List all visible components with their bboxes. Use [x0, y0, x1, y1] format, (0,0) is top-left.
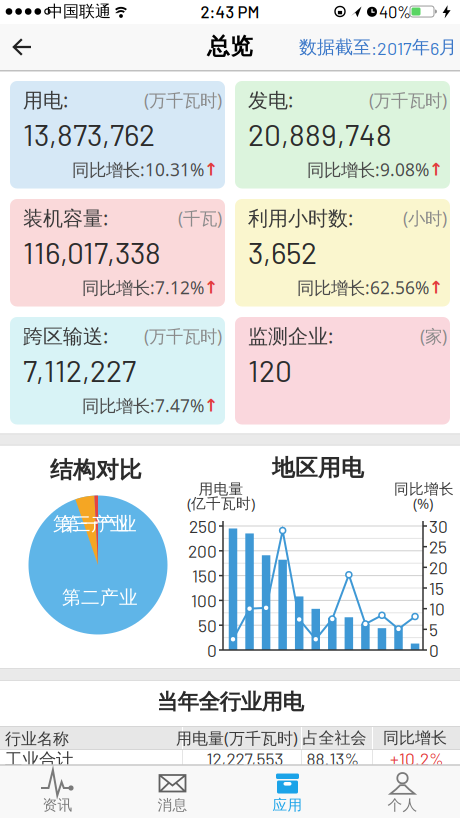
button[interactable]: 利用小时数: — [235, 199, 450, 306]
staticText: 数据截至:2017年6月 — [299, 36, 457, 59]
staticText: 13,873,762 — [23, 116, 155, 152]
button[interactable]: 消息 — [130, 765, 215, 818]
staticText: (家) — [420, 324, 447, 347]
staticText: (千瓦) — [178, 206, 222, 229]
staticText: (小时) — [403, 206, 447, 229]
button[interactable]: 跨区输送: — [10, 317, 225, 424]
staticText: 同比增长 — [394, 480, 454, 498]
staticText: (%) — [413, 493, 433, 513]
staticText: 同比增长:10.31% — [72, 158, 204, 181]
button[interactable]: Back — [3, 25, 47, 69]
staticText: 监测企业: — [248, 322, 333, 349]
button[interactable]: 资讯 — [15, 765, 100, 818]
staticText: 用电量(万千瓦时) — [176, 727, 298, 749]
staticText: 200 — [188, 540, 217, 561]
button[interactable]: 装机容量: — [10, 199, 225, 306]
staticText: 7,112,227 — [23, 352, 136, 388]
staticText: 资讯 — [42, 796, 72, 814]
staticText: ↑ — [204, 396, 219, 415]
staticText: (万千瓦时) — [144, 324, 222, 347]
staticText: 30 — [429, 516, 448, 536]
staticText: 3,652 — [248, 234, 317, 270]
staticText: 15 — [429, 578, 444, 598]
staticText: ↑ — [429, 278, 444, 297]
staticText: 100 — [191, 590, 217, 611]
staticText: 当年全行业用电 — [156, 689, 303, 715]
staticText: 装机容量: — [23, 204, 108, 231]
staticText: 第一产业 — [61, 512, 137, 535]
staticText: 个人 — [387, 796, 417, 814]
staticText: 120 — [248, 352, 292, 388]
staticText: ↑ — [204, 160, 219, 179]
staticText: 12,227,553 — [206, 748, 283, 769]
staticText: 消息 — [157, 796, 187, 814]
button[interactable]: 个人 — [360, 765, 445, 818]
staticText: +10.2% — [390, 748, 444, 769]
staticText: 应用 — [272, 796, 302, 814]
staticText: 50 — [198, 615, 217, 636]
button[interactable]: 发电: — [235, 81, 450, 188]
staticText: 用电量 — [198, 480, 243, 498]
staticText: ↑ — [204, 278, 219, 297]
staticText: 地区用电 — [272, 454, 364, 482]
staticText: 40% — [379, 1, 411, 21]
staticText: 结构对比 — [50, 456, 142, 484]
staticText: 0 — [207, 640, 217, 660]
staticText: 利用小时数: — [248, 204, 353, 231]
staticText: 总览 — [207, 33, 253, 60]
staticText: 工业合计 — [5, 749, 73, 770]
staticText: 250 — [189, 516, 217, 536]
staticText: 116,017,338 — [23, 234, 161, 270]
button[interactable]: 监测企业: — [235, 317, 450, 424]
staticText: 同比增长:7.12% — [82, 276, 204, 299]
staticText: 同比增长 — [383, 728, 447, 748]
staticText: 中国联通 — [47, 2, 111, 21]
staticText: 5 — [429, 619, 438, 640]
staticText: 行业名称 — [5, 729, 69, 749]
staticText: 跨区输送: — [23, 322, 108, 349]
staticText: (亿千瓦时) — [187, 493, 255, 513]
button[interactable]: 用电: — [10, 81, 225, 188]
staticText: 同比增长:7.47% — [82, 394, 204, 417]
staticText: 150 — [192, 565, 217, 586]
staticText: 20,889,748 — [248, 116, 392, 152]
staticText: (万千瓦时) — [144, 88, 222, 111]
staticText: 第二产业 — [62, 586, 138, 609]
staticText: 用电: — [23, 86, 68, 113]
button[interactable]: 数据截至:2017年6月 — [287, 36, 457, 59]
staticText: 0 — [429, 640, 439, 660]
staticText: ↑ — [429, 160, 444, 179]
staticText: 10 — [429, 598, 445, 619]
staticText: 25 — [429, 536, 447, 557]
staticText: (万千瓦时) — [369, 88, 447, 111]
button[interactable]: 应用 — [245, 765, 330, 818]
staticText: 发电: — [248, 86, 293, 113]
staticText: 同比增长:62.56% — [297, 276, 429, 299]
staticText: 第三产业 — [53, 512, 129, 535]
staticText: 占全社会 — [302, 728, 366, 748]
staticText: 2:43 PM — [200, 1, 259, 21]
staticText: 同比增长:9.08% — [307, 158, 429, 181]
staticText: 88.13% — [306, 748, 359, 769]
staticText: 20 — [429, 557, 448, 578]
